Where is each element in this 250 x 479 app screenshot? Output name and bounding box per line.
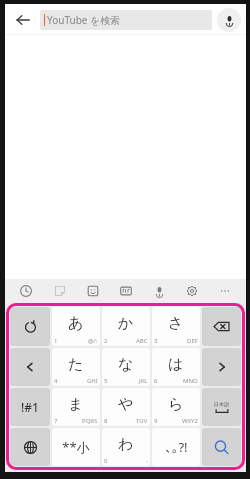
- staticText: @/:: [88, 337, 98, 345]
- staticText: !#1: [21, 399, 39, 415]
- button[interactable]: Key: [202, 307, 241, 346]
- button[interactable]: YouTube を検索: [40, 10, 212, 30]
- button[interactable]: Settings: [181, 280, 203, 302]
- staticText: 日本語: [214, 401, 229, 407]
- button[interactable]: Key: [10, 307, 50, 346]
- button[interactable]: Stickers: [49, 280, 71, 302]
- staticText: や: [118, 395, 134, 414]
- button[interactable]: や: [102, 388, 150, 426]
- button[interactable]: **小: [52, 428, 100, 466]
- staticText: DEF: [187, 337, 198, 345]
- button[interactable]: GIF: [115, 280, 137, 302]
- staticText: YouTube を検索: [47, 13, 121, 27]
- staticText: 7: [54, 417, 58, 425]
- staticText: た: [68, 355, 84, 374]
- button[interactable]: Key: [202, 348, 241, 386]
- staticText: WXYZ: [182, 417, 198, 425]
- staticText: **小: [62, 438, 90, 456]
- button[interactable]: さ: [152, 307, 200, 346]
- button[interactable]: Key: [10, 388, 50, 426]
- button[interactable]: は: [152, 348, 200, 386]
- staticText: ら: [168, 395, 184, 414]
- staticText: 2: [104, 337, 108, 345]
- staticText: 8: [104, 417, 108, 425]
- staticText: 1: [54, 337, 58, 345]
- staticText: さ: [168, 314, 184, 333]
- button[interactable]: Key: [202, 428, 241, 466]
- button[interactable]: Voice input: [148, 280, 170, 302]
- staticText: あ: [68, 314, 84, 333]
- staticText: ABC: [136, 337, 148, 345]
- staticText: 3: [154, 337, 158, 345]
- button[interactable]: Key: [202, 388, 241, 426]
- button[interactable]: Key: [10, 428, 50, 466]
- button[interactable]: Back: [10, 7, 36, 33]
- staticText: 0: [104, 457, 108, 465]
- button[interactable]: な: [102, 348, 150, 386]
- staticText: か: [118, 314, 134, 333]
- button[interactable]: Emoji recents: [15, 280, 37, 302]
- staticText: -: [146, 457, 148, 465]
- staticText: JKL: [139, 377, 148, 385]
- button[interactable]: Voice search: [217, 8, 241, 32]
- button[interactable]: ま: [52, 388, 100, 426]
- staticText: PQRS: [82, 417, 98, 425]
- staticText: ､｡?!: [165, 438, 188, 456]
- button[interactable]: ､｡?!: [152, 428, 200, 466]
- staticText: 6: [154, 377, 158, 385]
- button[interactable]: か: [102, 307, 150, 346]
- staticText: な: [118, 355, 134, 374]
- button[interactable]: More options: [214, 280, 236, 302]
- staticText: MNO: [183, 377, 198, 385]
- staticText: TUV: [136, 417, 148, 425]
- staticText: 4: [54, 377, 58, 385]
- button[interactable]: わ: [102, 428, 150, 466]
- button[interactable]: ら: [152, 388, 200, 426]
- button[interactable]: た: [52, 348, 100, 386]
- staticText: GHI: [87, 377, 98, 385]
- staticText: わ: [118, 435, 134, 454]
- button[interactable]: Emoji: [82, 280, 104, 302]
- button[interactable]: Key: [10, 348, 50, 386]
- staticText: は: [168, 355, 184, 374]
- staticText: ま: [68, 395, 84, 414]
- button[interactable]: あ: [52, 307, 100, 346]
- staticText: 9: [154, 417, 158, 425]
- staticText: 5: [104, 377, 108, 385]
